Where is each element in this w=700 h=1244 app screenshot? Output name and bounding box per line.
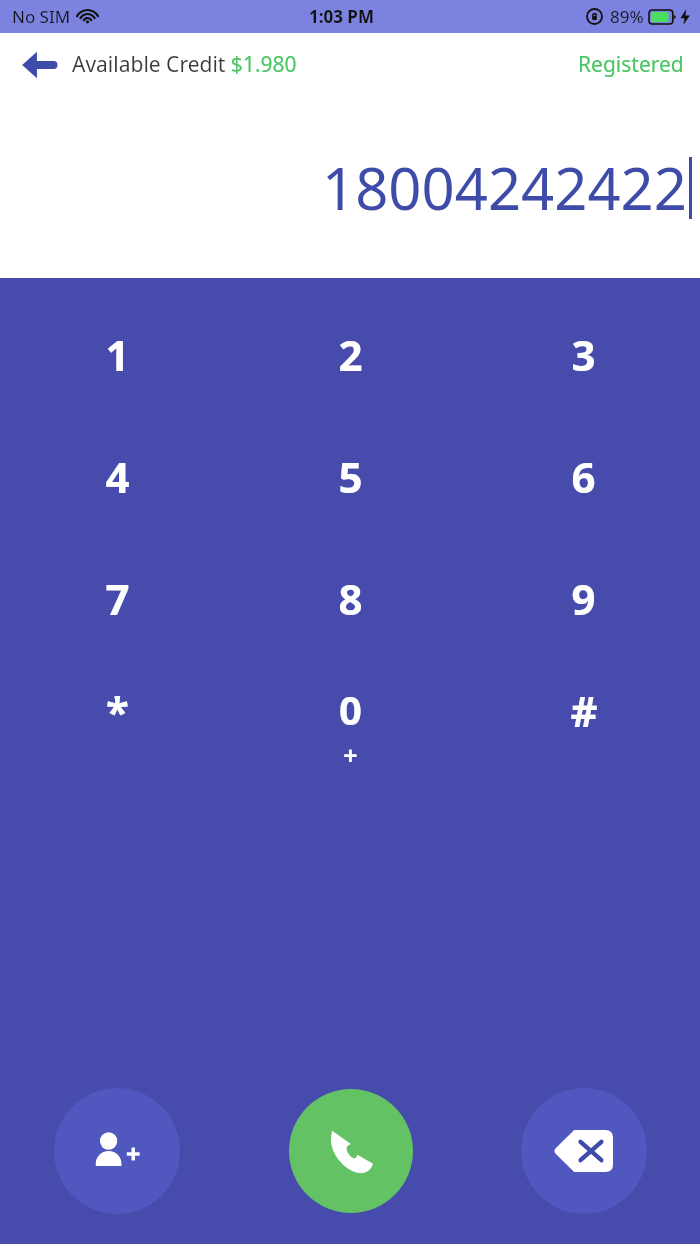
button[interactable]: 1	[0, 326, 234, 383]
button[interactable]: 3	[467, 326, 700, 383]
staticText: #	[570, 682, 598, 739]
button[interactable]: Registered	[574, 44, 688, 85]
button[interactable]: *	[0, 682, 234, 739]
staticText: 1	[105, 326, 130, 383]
staticText: 6	[571, 448, 596, 505]
staticText: 4	[105, 448, 130, 505]
staticText: No SIM	[12, 5, 71, 28]
button[interactable]: 0	[234, 682, 467, 772]
button[interactable]: 2	[234, 326, 467, 383]
staticText: 89%	[610, 5, 644, 28]
button[interactable]: 4	[0, 448, 234, 505]
button[interactable]: 5	[234, 448, 467, 505]
staticText: 2	[338, 326, 363, 383]
button[interactable]: Add contact	[54, 1088, 180, 1214]
staticText: 0	[339, 682, 362, 736]
button[interactable]: #	[467, 682, 700, 739]
button[interactable]: 6	[467, 448, 700, 505]
staticText: 9	[571, 570, 596, 627]
button[interactable]: Call	[289, 1089, 413, 1213]
button[interactable]: Back	[16, 41, 64, 89]
staticText: 18004242422	[322, 148, 687, 227]
staticText: 1:03 PM	[309, 5, 374, 28]
button[interactable]: 7	[0, 570, 234, 627]
staticText: 8	[338, 570, 363, 627]
staticText: Registered	[578, 50, 684, 79]
staticText: +	[343, 738, 358, 772]
staticText: 7	[105, 570, 130, 627]
staticText: *	[106, 682, 129, 739]
button[interactable]: Backspace	[521, 1088, 647, 1214]
button[interactable]: 9	[467, 570, 700, 627]
button[interactable]: 8	[234, 570, 467, 627]
staticText: Available Credit $1.980	[72, 50, 297, 79]
staticText: 3	[571, 326, 596, 383]
staticText: 5	[338, 448, 363, 505]
